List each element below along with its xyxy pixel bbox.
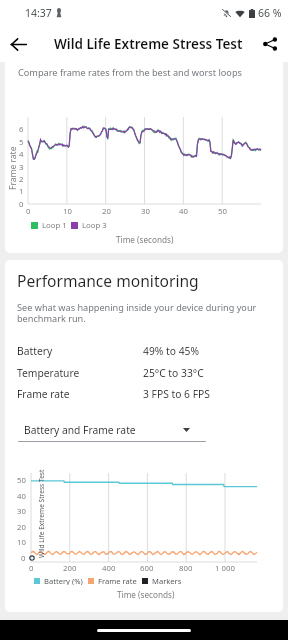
staticText: 40 <box>179 206 188 217</box>
staticText: Time (seconds) <box>117 589 175 600</box>
button[interactable]: Back <box>0 26 36 62</box>
staticText: Frame rate <box>17 387 70 401</box>
staticText: Compare frame rates from the best and wo… <box>18 66 242 79</box>
staticText: 49% to 45% <box>143 344 199 358</box>
staticText: 5 <box>19 137 24 148</box>
staticText: Performance monitoring <box>17 270 199 291</box>
button[interactable]: Battery and Frame rate <box>18 419 206 442</box>
staticText: 0 <box>21 553 26 564</box>
staticText: 0 <box>26 206 31 217</box>
staticText: Wild Life Extreme Stress Test <box>54 35 243 53</box>
staticText: 800 <box>179 563 193 574</box>
staticText: 2 <box>19 174 24 185</box>
staticText: Frame rate <box>98 576 137 585</box>
staticText: 14:37 <box>25 6 52 20</box>
staticText: 200 <box>63 563 77 574</box>
staticText: 3 <box>19 162 24 173</box>
staticText: 30 <box>141 206 150 217</box>
staticText: 3 FPS to 6 FPS <box>143 387 210 401</box>
staticText: Temperature <box>17 366 80 380</box>
staticText: 66 % <box>258 6 282 20</box>
staticText: 10 <box>17 537 26 548</box>
staticText: 1 <box>19 186 24 197</box>
staticText: 0 <box>19 199 24 210</box>
staticText: Frame rate <box>7 146 19 190</box>
button[interactable]: Share <box>252 26 288 62</box>
staticText: 25°C to 33°C <box>143 366 204 380</box>
staticText: Wild Life Extreme Stress Test <box>37 469 46 558</box>
staticText: See what was happening inside your devic… <box>17 301 262 324</box>
staticText: Loop 3 <box>82 220 107 231</box>
staticText: 10 <box>63 206 72 217</box>
staticText: 50 <box>17 475 26 486</box>
staticText: Time (seconds) <box>116 234 174 245</box>
staticText: 40 <box>17 491 26 502</box>
staticText: Battery <box>17 344 53 358</box>
staticText: 600 <box>140 563 154 574</box>
staticText: 0 <box>29 563 34 574</box>
staticText: 30 <box>17 506 26 517</box>
staticText: 400 <box>102 563 116 574</box>
staticText: Battery (%) <box>44 576 83 585</box>
staticText: 4 <box>19 149 24 160</box>
staticText: Markers <box>152 576 182 585</box>
staticText: Loop 1 <box>42 220 67 231</box>
staticText: 6 <box>19 124 24 135</box>
staticText: 20 <box>102 206 111 217</box>
staticText: Battery and Frame rate <box>24 423 136 437</box>
staticText: 50 <box>218 206 227 217</box>
staticText: 1 000 <box>215 563 235 574</box>
staticText: 20 <box>17 522 26 533</box>
